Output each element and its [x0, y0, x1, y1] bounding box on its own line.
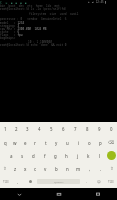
staticText: o	[88, 140, 91, 146]
staticText: cache	[0, 30, 9, 34]
button[interactable]: h	[61, 149, 72, 162]
staticText: root@localhost:/# ls -la /proc/self/fd/	[0, 7, 67, 11]
button[interactable]: 1	[0, 122, 11, 136]
button[interactable]: g	[50, 149, 61, 162]
button[interactable]: q	[0, 136, 10, 149]
button[interactable]: 4	[33, 122, 45, 136]
button[interactable]: ?123	[105, 175, 117, 188]
staticText: ,	[89, 166, 91, 172]
staticText: i	[78, 140, 80, 146]
button[interactable]: ⇧	[0, 162, 10, 175]
staticText: :	[14, 36, 16, 40]
staticText: bin boot dev etc home lib mnt	[0, 4, 60, 8]
staticText: n	[66, 166, 69, 172]
button[interactable]: c	[30, 162, 40, 175]
button[interactable]: 6	[57, 122, 69, 136]
staticText: b	[55, 166, 58, 172]
button[interactable]: v	[40, 162, 51, 175]
staticText: ☺	[97, 180, 101, 184]
button[interactable]: l	[94, 149, 105, 162]
staticText: ⌫	[108, 140, 115, 145]
staticText: model	[0, 21, 9, 25]
staticText: 10 : 1 1000000	[28, 40, 52, 44]
button[interactable]: ⇧	[106, 162, 117, 175]
staticText: X ▣ ■ ■ ■ ■	[0, 1, 27, 5]
button[interactable]: 9	[93, 122, 105, 136]
button[interactable]: j	[72, 149, 83, 162]
button[interactable]: s	[17, 149, 28, 162]
button[interactable]: p	[95, 136, 106, 149]
staticText: 4	[38, 126, 41, 132]
staticText: j	[77, 153, 79, 159]
button[interactable]: z	[10, 162, 20, 175]
button[interactable]: 0	[105, 122, 117, 136]
staticText: m	[76, 166, 81, 172]
staticText: q	[4, 140, 7, 146]
button[interactable]: d	[28, 149, 39, 162]
staticText: : 3	[14, 24, 20, 28]
button[interactable]: m	[73, 162, 84, 175]
staticText: 1	[4, 126, 7, 132]
staticText: bogomips	[0, 36, 14, 40]
button[interactable]: k	[83, 149, 94, 162]
button[interactable]: t	[40, 136, 51, 149]
button[interactable]: Home	[39, 188, 78, 200]
button[interactable]: n	[62, 162, 73, 175]
button[interactable]: 2	[11, 122, 22, 136]
button[interactable]: Back	[0, 188, 39, 200]
staticText: QWERTY	[54, 180, 64, 183]
staticText: g	[54, 153, 57, 159]
staticText: d	[32, 153, 35, 159]
staticText: cpu MHz	[0, 27, 12, 31]
staticText: ⇧	[110, 166, 114, 171]
staticText: c	[34, 166, 37, 172]
button[interactable]: ,	[12, 175, 24, 188]
button[interactable]: b	[51, 162, 62, 175]
staticText: ?123	[108, 180, 114, 184]
button[interactable]: u	[62, 136, 73, 149]
button[interactable]: Enter	[105, 149, 117, 162]
button[interactable]: Recents	[78, 188, 117, 200]
staticText: 9	[98, 126, 101, 132]
staticText: 6	[62, 126, 65, 132]
button[interactable]: .	[95, 162, 106, 175]
staticText: p	[99, 140, 102, 146]
button[interactable]: w	[10, 136, 20, 149]
staticText: e	[24, 140, 27, 146]
button[interactable]: y	[51, 136, 62, 149]
button[interactable]: 3	[22, 122, 33, 136]
button[interactable]: r	[30, 136, 40, 149]
staticText: root@localhost:/# echo "done" && exit 0	[0, 43, 67, 47]
staticText: t	[45, 140, 47, 146]
staticText: x	[24, 166, 27, 172]
button[interactable]: ,	[84, 162, 95, 175]
button[interactable]: 7	[69, 122, 81, 136]
button[interactable]: e	[20, 136, 30, 149]
staticText: u	[66, 140, 69, 146]
staticText: k	[87, 153, 90, 159]
staticText: 8	[86, 126, 89, 132]
button[interactable]: Voice input	[24, 175, 36, 188]
button[interactable]: 5	[45, 122, 57, 136]
button[interactable]: ?123	[0, 175, 12, 188]
button[interactable]: o	[84, 136, 95, 149]
button[interactable]: QWERTY	[37, 179, 80, 184]
button[interactable]: ☺	[93, 175, 105, 188]
staticText: ⇧	[3, 166, 7, 171]
button[interactable]: ⌫	[106, 136, 117, 149]
staticText: 5	[50, 126, 53, 132]
button[interactable]: i	[73, 136, 84, 149]
staticText: stepping	[0, 24, 14, 28]
button[interactable]: x	[20, 162, 30, 175]
button[interactable]: 8	[81, 122, 93, 136]
button[interactable]: f	[39, 149, 50, 162]
staticText: : 1234	[14, 21, 25, 25]
staticText: 0	[110, 126, 113, 132]
button[interactable]: a	[6, 149, 17, 162]
staticText: 2	[15, 126, 18, 132]
staticText: processor : 0 vendor GenuineIntel 6	[0, 17, 67, 21]
staticText: f	[44, 153, 46, 159]
staticText: h	[65, 153, 68, 159]
staticText: ● ◢ 12:45 ▮	[88, 0, 107, 4]
